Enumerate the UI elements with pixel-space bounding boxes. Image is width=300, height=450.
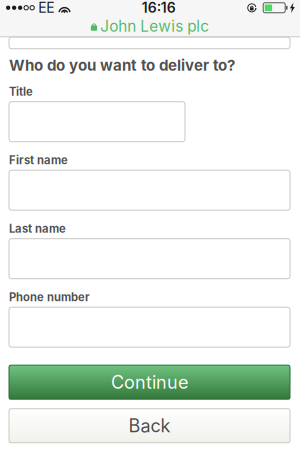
button[interactable]: Continue — [9, 365, 290, 399]
button[interactable]: Back — [9, 409, 290, 443]
staticText: Phone number — [9, 290, 90, 304]
staticText: John Lewis plc — [100, 17, 209, 36]
button[interactable]: John Lewis plc — [0, 16, 300, 37]
staticText: EE — [38, 0, 54, 16]
staticText: Back — [128, 415, 170, 437]
staticText: 16:16 — [142, 0, 176, 16]
staticText: Title — [9, 85, 33, 98]
staticText: First name — [9, 153, 68, 167]
staticText: Who do you want to deliver to? — [9, 56, 235, 74]
staticText: Last name — [9, 222, 66, 235]
staticText: Continue — [111, 371, 188, 393]
